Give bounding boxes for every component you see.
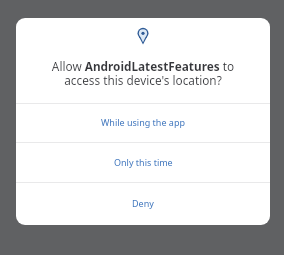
staticText: Allow AndroidLatestFeatures to access th… (40, 58, 246, 89)
button[interactable]: Only this time (16, 143, 270, 182)
staticText: Deny (132, 197, 154, 209)
staticText: Only this time (114, 156, 173, 168)
staticText: While using the app (101, 116, 185, 128)
button[interactable]: While using the app (16, 104, 270, 142)
button[interactable]: Deny (16, 183, 270, 225)
